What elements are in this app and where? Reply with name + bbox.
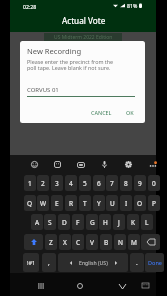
button[interactable]: Settings bbox=[124, 160, 133, 169]
staticText: D bbox=[62, 218, 67, 227]
button[interactable]: T bbox=[79, 195, 91, 211]
button[interactable]: 0 bbox=[148, 175, 160, 191]
staticText: W bbox=[40, 199, 47, 208]
staticText: 1 bbox=[28, 179, 32, 188]
button[interactable]: 8 bbox=[120, 175, 132, 191]
staticText: US Midterm 2022 Edition bbox=[54, 34, 113, 41]
staticText: Actual Vote bbox=[62, 15, 106, 26]
button[interactable]: X bbox=[59, 234, 71, 250]
button[interactable]: Z bbox=[45, 234, 57, 250]
button[interactable]: More options bbox=[148, 160, 157, 169]
button[interactable]: 2 bbox=[37, 175, 49, 191]
button[interactable]: CANCEL bbox=[89, 107, 114, 118]
button[interactable]: Shift bbox=[24, 234, 43, 250]
button[interactable]: GIF bbox=[76, 160, 85, 169]
button[interactable]: 4 bbox=[65, 175, 77, 191]
button[interactable]: I bbox=[120, 195, 132, 211]
staticText: P bbox=[152, 199, 156, 208]
staticText: 4 bbox=[69, 179, 73, 188]
button[interactable]: C bbox=[72, 234, 84, 250]
button[interactable]: Q bbox=[24, 195, 36, 211]
staticText: N bbox=[118, 238, 123, 247]
staticText: CANCEL bbox=[91, 109, 112, 116]
button[interactable]: M bbox=[128, 234, 140, 250]
button[interactable]: Backspace bbox=[141, 234, 160, 250]
button[interactable]: 9 bbox=[134, 175, 146, 191]
staticText: Done bbox=[148, 259, 162, 266]
button[interactable]: 7 bbox=[106, 175, 118, 191]
button[interactable]: G bbox=[86, 214, 98, 230]
button[interactable]: N bbox=[114, 234, 126, 250]
staticText: T bbox=[83, 199, 87, 208]
staticText: S bbox=[48, 218, 52, 227]
button[interactable]: A bbox=[31, 214, 43, 230]
staticText: E bbox=[55, 199, 59, 208]
button[interactable]: Hide keyboard bbox=[114, 278, 130, 294]
staticText: Q bbox=[27, 199, 33, 208]
button[interactable]: R bbox=[65, 195, 77, 211]
staticText: 3 bbox=[55, 179, 59, 188]
button[interactable]: Y bbox=[93, 195, 105, 211]
button[interactable]: Home bbox=[72, 278, 88, 294]
button[interactable]: W bbox=[37, 195, 49, 211]
staticText: 0 bbox=[152, 179, 156, 188]
staticText: J bbox=[118, 218, 120, 227]
button[interactable]: Switch keyboard bbox=[138, 278, 152, 292]
button[interactable]: B bbox=[100, 234, 112, 250]
staticText: H bbox=[103, 218, 108, 227]
button[interactable]: J bbox=[113, 214, 125, 230]
button[interactable]: P bbox=[148, 195, 160, 211]
staticText: , bbox=[48, 258, 50, 267]
button[interactable]: Recent apps bbox=[33, 278, 49, 294]
button[interactable]: V bbox=[86, 234, 98, 250]
staticText: 02:28 bbox=[23, 3, 37, 10]
button[interactable]: 5 bbox=[79, 175, 91, 191]
button[interactable]: H bbox=[99, 214, 111, 230]
staticText: V bbox=[90, 238, 94, 247]
staticText: C bbox=[76, 238, 81, 247]
button[interactable]: S bbox=[44, 214, 56, 230]
staticText: Please enter the precinct from the poll … bbox=[27, 58, 114, 72]
button[interactable]: O bbox=[134, 195, 146, 211]
button[interactable]: Emoji bbox=[30, 160, 39, 169]
staticText: L bbox=[145, 218, 149, 227]
staticText: CORVUS 01 bbox=[27, 86, 59, 94]
staticText: B bbox=[104, 238, 109, 247]
staticText: 6 bbox=[97, 179, 101, 188]
button[interactable]: D bbox=[58, 214, 70, 230]
button[interactable]: 3 bbox=[51, 175, 63, 191]
staticText: U bbox=[110, 199, 115, 208]
staticText: Y bbox=[97, 199, 101, 208]
button[interactable]: F bbox=[72, 214, 84, 230]
button[interactable]: Stickers bbox=[53, 160, 62, 169]
staticText: Z bbox=[49, 238, 53, 247]
button[interactable]: , bbox=[42, 253, 56, 272]
button[interactable]: Space bbox=[58, 253, 128, 272]
staticText: 5 bbox=[83, 179, 87, 188]
button[interactable]: . bbox=[130, 253, 144, 272]
staticText: 8 bbox=[124, 179, 128, 188]
staticText: X bbox=[63, 238, 67, 247]
button[interactable]: OK bbox=[124, 107, 136, 118]
staticText: I bbox=[125, 199, 128, 208]
staticText: F bbox=[76, 218, 80, 227]
staticText: New Recording bbox=[27, 46, 82, 56]
button[interactable]: Done bbox=[145, 253, 164, 272]
staticText: 2 bbox=[41, 179, 45, 188]
staticText: O bbox=[137, 199, 143, 208]
staticText: 81% bbox=[127, 2, 138, 9]
staticText: M bbox=[131, 238, 137, 247]
staticText: OK bbox=[126, 109, 134, 116]
button[interactable]: 1 bbox=[24, 175, 36, 191]
button[interactable]: K bbox=[127, 214, 139, 230]
button[interactable]: E bbox=[51, 195, 63, 211]
staticText: English (US) bbox=[79, 259, 108, 266]
button[interactable]: 6 bbox=[93, 175, 105, 191]
staticText: R bbox=[69, 199, 74, 208]
button[interactable]: !#1 bbox=[23, 253, 39, 272]
staticText: 9 bbox=[138, 179, 142, 188]
button[interactable]: L bbox=[141, 214, 153, 230]
staticText: . bbox=[136, 258, 138, 267]
button[interactable]: U bbox=[106, 195, 118, 211]
button[interactable]: Voice input bbox=[100, 160, 109, 169]
